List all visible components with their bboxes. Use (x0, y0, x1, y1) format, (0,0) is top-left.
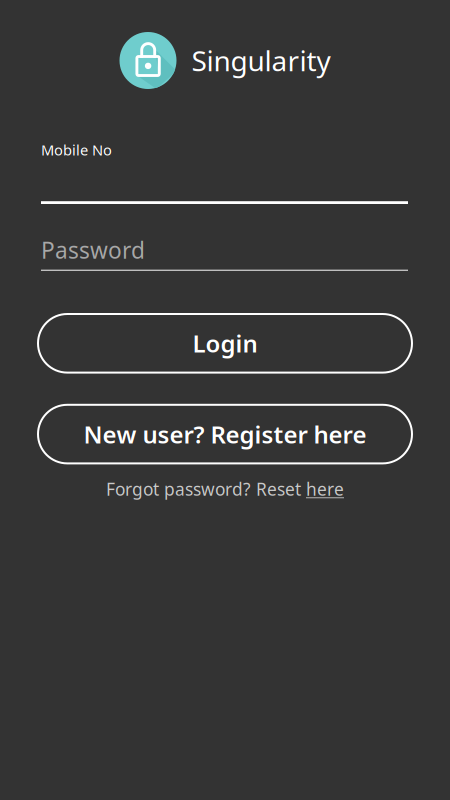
staticText: Login (192, 327, 257, 359)
staticText: Password (41, 235, 145, 265)
button[interactable]: Login (38, 314, 412, 373)
staticText: Singularity (191, 42, 330, 79)
button[interactable]: Password (41, 235, 408, 271)
staticText: New user? Register here (83, 418, 366, 450)
staticText: here (306, 477, 344, 500)
button[interactable]: Forgot password? Reset (0, 476, 450, 502)
button[interactable]: New user? Register here (38, 405, 412, 463)
staticText: Mobile No (41, 140, 112, 159)
button[interactable]: Mobile No (41, 140, 408, 204)
staticText: Forgot password? Reset (106, 477, 306, 500)
